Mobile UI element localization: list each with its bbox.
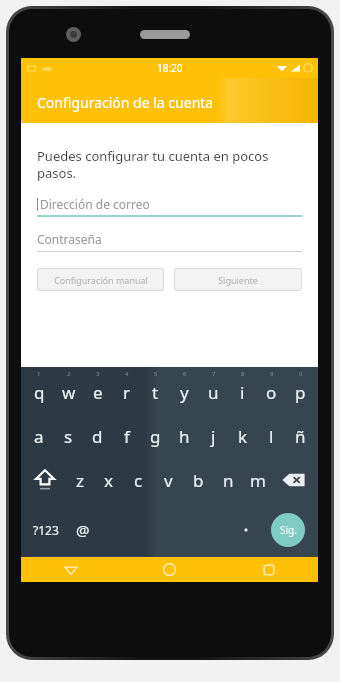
button[interactable]: m [243,458,273,502]
button[interactable]: 8 [228,367,257,414]
staticText: t [152,381,159,404]
button[interactable]: Backspace [273,458,315,502]
button[interactable]: 2 [54,367,83,414]
staticText: 6 [183,370,187,378]
button[interactable]: h [170,414,199,458]
button[interactable]: @ [68,502,97,557]
button[interactable]: n [213,458,243,502]
staticText: @ [76,520,90,540]
button[interactable]: c [123,458,153,502]
staticText: Contraseña [37,231,102,247]
button[interactable]: j [199,414,228,458]
button[interactable]: l [257,414,286,458]
staticText: 5 [154,370,158,378]
button[interactable]: ?123 [24,502,68,557]
staticText: s [64,425,73,448]
button[interactable]: Home [120,557,219,582]
button[interactable]: Recent apps [219,557,318,582]
staticText: Configuración de la cuenta [37,93,214,112]
button[interactable]: Contraseña [37,226,302,252]
button[interactable]: a [24,414,54,458]
staticText: e [93,381,103,404]
staticText: l [269,425,274,448]
staticText: k [238,425,248,448]
button[interactable]: 7 [199,367,228,414]
staticText: y [180,381,189,404]
button[interactable]: Shift [24,458,65,502]
button[interactable]: g [141,414,170,458]
button[interactable]: 0 [286,367,315,414]
button[interactable]: 9 [257,367,286,414]
staticText: 18:20 [157,61,183,75]
staticText: q [34,381,45,404]
staticText: w [62,381,76,404]
staticText: x [104,469,113,492]
staticText: r [123,381,131,404]
staticText: Dirección de correo [40,196,150,212]
staticText: n [223,469,234,492]
staticText: h [179,425,190,448]
button[interactable]: Dirección de correo [37,191,302,217]
staticText: Sig. [280,523,297,537]
staticText: 1 [37,370,41,378]
staticText: ñ [295,425,306,448]
staticText: 9 [270,370,274,378]
staticText: f [124,425,130,448]
button[interactable]: Space [97,502,231,557]
staticText: g [150,425,161,448]
staticText: 4 [125,370,129,378]
staticText: j [211,425,216,448]
button[interactable]: f [112,414,141,458]
button[interactable]: Configuración manual [37,268,164,291]
button[interactable]: b [183,458,213,502]
button[interactable]: 6 [170,367,199,414]
button[interactable]: Sig. [271,513,305,547]
staticText: 2 [67,370,71,378]
staticText: o [266,381,277,404]
button[interactable]: 5 [141,367,170,414]
button[interactable]: 4 [112,367,141,414]
button[interactable]: 3 [83,367,112,414]
staticText: 0 [299,370,303,378]
button[interactable]: ñ [286,414,315,458]
staticText: b [193,469,204,492]
button[interactable]: 1 [24,367,54,414]
staticText: d [92,425,103,448]
button[interactable]: Back [21,557,120,582]
staticText: Configuración manual [54,274,148,286]
staticText: 8 [241,370,245,378]
staticText: m [250,469,266,492]
button[interactable]: d [83,414,112,458]
staticText: Puedes configurar tu cuenta en pocos pas… [37,147,302,182]
staticText: Siguiente [218,274,258,286]
button[interactable]: s [54,414,83,458]
staticText: i [240,381,245,404]
button[interactable]: k [228,414,257,458]
button[interactable]: v [153,458,183,502]
button[interactable]: x [94,458,123,502]
staticText: c [134,469,143,492]
staticText: a [34,425,44,448]
staticText: z [76,469,84,492]
button[interactable]: Siguiente [174,268,302,291]
button[interactable] [231,502,260,557]
button[interactable]: z [65,458,94,502]
staticText: ?123 [33,522,59,538]
staticText: v [164,469,173,492]
staticText: u [208,381,219,404]
staticText: 3 [96,370,100,378]
staticText: p [295,381,306,404]
staticText: 7 [212,370,216,378]
